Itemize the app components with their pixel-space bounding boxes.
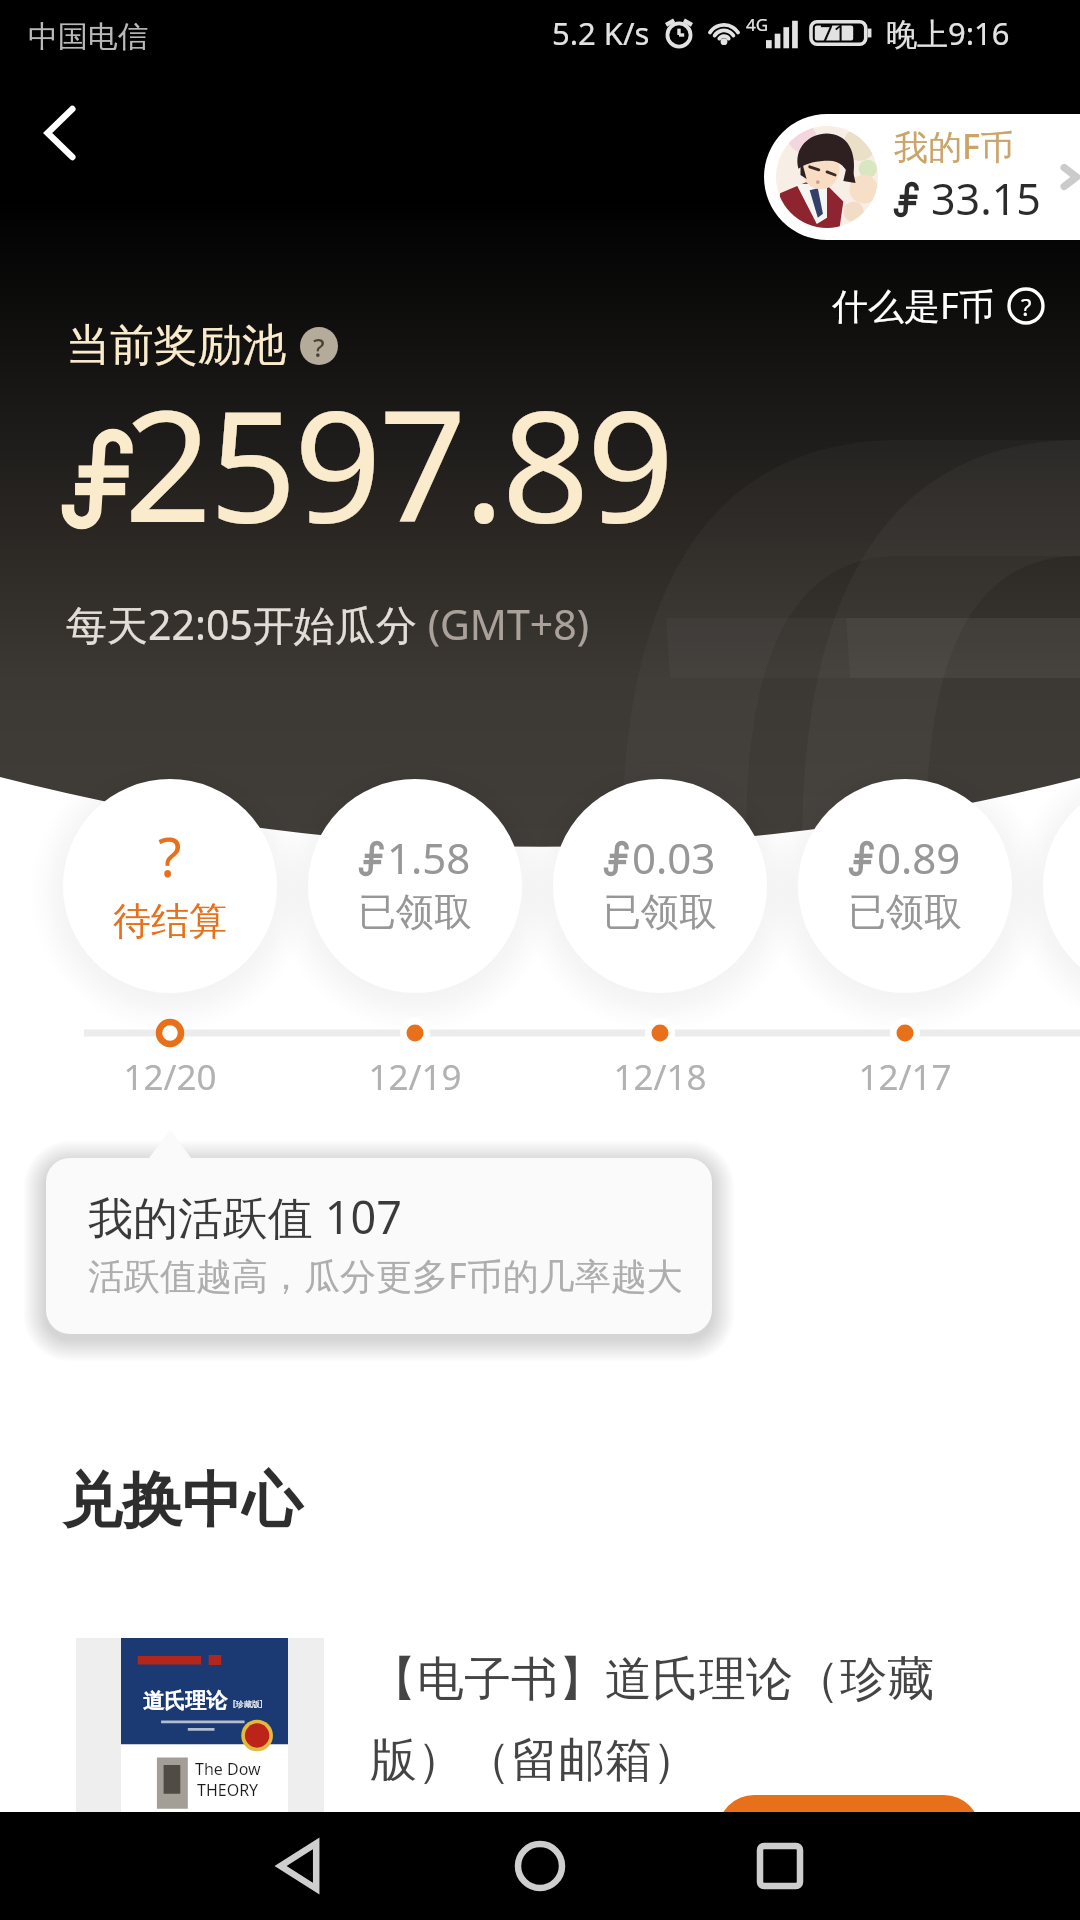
staticText: 已领取 xyxy=(848,888,962,936)
staticText: 12/19 xyxy=(368,1053,462,1101)
staticText: 【电子书】道氏理论（珍藏版）（留邮箱） xyxy=(370,1650,936,1790)
staticText: 中国电信 xyxy=(28,18,148,56)
button[interactable]: 0.55 xyxy=(1043,779,1080,993)
button[interactable]: 0.03 xyxy=(553,779,767,993)
staticText: 已领取 xyxy=(358,888,472,936)
staticText: 12/20 xyxy=(123,1053,217,1101)
staticText: 0.03 xyxy=(632,829,716,886)
staticText: 已领取 xyxy=(603,888,717,936)
staticText: 1.58 xyxy=(387,829,471,886)
staticText: (GMT+8) xyxy=(417,596,589,652)
staticText: ? xyxy=(158,819,182,893)
button[interactable] xyxy=(718,1795,980,1867)
button[interactable]: 我的活跃值 107 xyxy=(46,1158,712,1334)
staticText: 什么是F币 xyxy=(832,281,995,330)
staticText: 当前奖励池 xyxy=(66,318,286,373)
staticText: 12/18 xyxy=(613,1053,707,1101)
staticText: 每天22:05开始瓜分 xyxy=(66,596,417,652)
staticText: [珍藏版] xyxy=(233,1698,263,1709)
staticText: 5.2 K/s xyxy=(552,12,650,54)
staticText: 71 xyxy=(820,17,847,48)
button[interactable]: ? xyxy=(63,779,277,993)
staticText: 12/17 xyxy=(858,1053,952,1101)
button[interactable]: 我的F币 xyxy=(764,114,1080,240)
staticText: 晚上9:16 xyxy=(886,12,1010,54)
staticText: 33.15 xyxy=(931,169,1041,228)
staticText: 我的F币 xyxy=(894,123,1014,169)
button[interactable]: Recent apps xyxy=(724,1812,836,1920)
button[interactable]: Home xyxy=(484,1812,596,1920)
staticText: 4G xyxy=(746,13,769,36)
staticText: THEORY xyxy=(197,1779,259,1801)
button[interactable]: Back xyxy=(244,1812,356,1920)
staticText: 道氏理论 xyxy=(143,1688,227,1714)
staticText: ? xyxy=(1021,290,1032,323)
staticText: 我的活跃值 107 xyxy=(88,1186,402,1247)
staticText: 2597.89 xyxy=(124,357,672,567)
button[interactable]: What is the reward pool xyxy=(300,327,338,365)
staticText: 活跃值越高，瓜分更多F币的几率越大 xyxy=(88,1251,683,1300)
button[interactable]: 什么是F币 xyxy=(828,277,1049,334)
button[interactable]: 1.58 xyxy=(308,779,522,993)
button[interactable]: Back xyxy=(18,91,102,175)
button[interactable]: 道氏理论 xyxy=(46,1613,1032,1920)
button[interactable]: 0.89 xyxy=(798,779,1012,993)
staticText: 兑换中心 xyxy=(62,1463,302,1539)
staticText: The Dow xyxy=(195,1758,261,1780)
staticText: 0.89 xyxy=(877,829,961,886)
staticText: 待结算 xyxy=(113,897,227,945)
staticText: ? xyxy=(313,329,325,364)
